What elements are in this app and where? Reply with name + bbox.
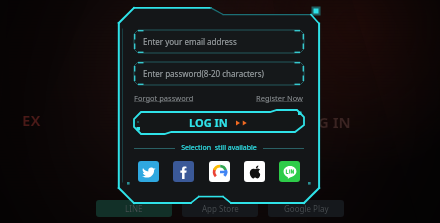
button[interactable]: Sign in with LINE (279, 161, 300, 182)
button[interactable]: LINE (96, 200, 172, 217)
button[interactable]: Sign in with Twitter (138, 161, 159, 182)
button[interactable]: Register Now (256, 90, 304, 106)
staticText: LINE (125, 203, 143, 214)
staticText: Register Now (256, 93, 304, 103)
staticText: EX (22, 110, 41, 130)
button[interactable]: Enter password(8-20 characters) (134, 62, 304, 85)
staticText: Selection still available (181, 143, 257, 153)
staticText: LOG IN (189, 115, 228, 130)
button[interactable]: Sign in with Apple (244, 161, 265, 182)
button[interactable]: LOG IN (134, 110, 304, 134)
button[interactable]: Sign in with Google (209, 161, 230, 182)
button[interactable]: Sign in with Facebook (173, 161, 194, 182)
staticText: Enter password(8-20 characters) (143, 68, 264, 79)
staticText: Forgot password (134, 93, 194, 103)
button[interactable]: App Store (182, 200, 258, 217)
button[interactable]: Google Play (268, 200, 344, 217)
staticText: Google Play (284, 203, 329, 214)
button[interactable]: Forgot password (134, 90, 194, 106)
button[interactable]: Enter your email address (134, 30, 304, 53)
staticText: G IN (318, 112, 351, 132)
staticText: App Store (202, 203, 239, 214)
staticText: Enter your email address (143, 36, 237, 47)
